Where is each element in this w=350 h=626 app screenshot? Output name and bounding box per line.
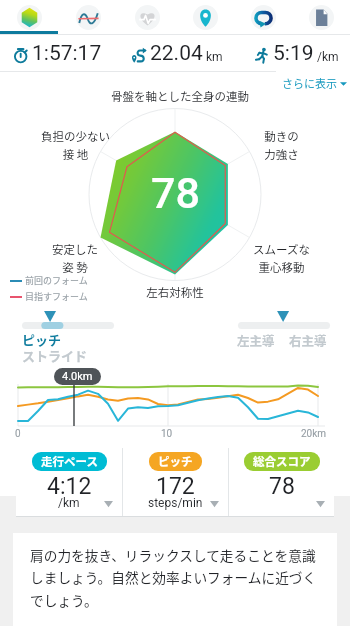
staticText: steps/min [148, 496, 203, 510]
staticText: 左右対称性 [146, 284, 204, 301]
staticText: 10 [161, 428, 173, 440]
staticText: スムーズな 重心移動 [253, 241, 310, 276]
staticText: 走行ペース [41, 453, 98, 470]
button[interactable]: 走行ペース [16, 448, 122, 516]
staticText: km [203, 50, 223, 64]
staticText: 172 [156, 473, 195, 500]
button[interactable]: 総合スコア [229, 448, 334, 516]
staticText: /km [58, 496, 80, 510]
button[interactable]: Heart rate [118, 0, 176, 34]
staticText: 78 [151, 168, 200, 218]
button[interactable]: Report [292, 0, 350, 34]
staticText: 肩の力を抜き、リラックスして走ることを意識しましょう。自然と効率よいフォームに近… [30, 545, 322, 610]
button[interactable]: さらに表示 [276, 74, 350, 92]
staticText: 0 [15, 428, 21, 440]
staticText: 1:57:17 [32, 41, 102, 66]
staticText: さらに表示 [282, 75, 337, 91]
staticText: /km [314, 50, 339, 64]
button[interactable]: Overview [0, 0, 59, 34]
staticText: 安定した 姿 勢 [52, 241, 98, 276]
staticText: 右主導 [289, 331, 327, 349]
button[interactable]: Waveform [59, 0, 118, 34]
staticText: 目指すフォーム [25, 290, 88, 303]
staticText: 20km [301, 428, 327, 440]
staticText: 5:19 [273, 41, 314, 66]
staticText: 4.0km [62, 370, 93, 383]
staticText: 左主導 [237, 331, 275, 349]
staticText: 総合スコア [253, 453, 311, 470]
staticText: 前回のフォーム [25, 274, 88, 287]
staticText: 骨盤を軸とした全身の連動 [111, 88, 249, 105]
button[interactable]: Map [176, 0, 234, 34]
staticText: 22.04 [150, 41, 203, 66]
staticText: 4:12 [47, 473, 92, 500]
button[interactable]: Laps [234, 0, 292, 34]
staticText: 78 [269, 473, 295, 500]
staticText: ピッチ [158, 453, 193, 470]
staticText: ストライド [22, 346, 88, 365]
button[interactable]: ピッチ [123, 448, 228, 516]
staticText: 動きの 力強さ [264, 128, 299, 163]
staticText: 負担の少ない 接 地 [41, 128, 110, 163]
staticText: ピッチ [22, 330, 62, 349]
